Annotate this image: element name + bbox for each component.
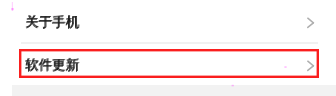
- other: Open: [307, 59, 317, 71]
- staticText: 软件更新: [25, 57, 79, 74]
- button[interactable]: 软件更新: [0, 43, 336, 86]
- button[interactable]: 关于手机: [0, 0, 336, 43]
- staticText: 软件更新: [25, 56, 79, 73]
- staticText: 关于手机: [25, 14, 79, 31]
- staticText: 关于手机: [25, 13, 79, 30]
- staticText: 软件更新: [26, 56, 80, 73]
- other: Open: [307, 16, 317, 28]
- staticText: 关于手机: [26, 13, 80, 30]
